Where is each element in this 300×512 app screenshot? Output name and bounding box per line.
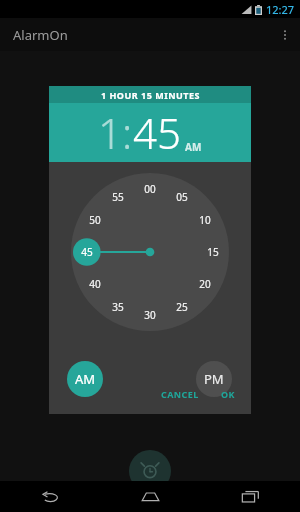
- staticText: 35: [112, 300, 124, 314]
- staticText: 20: [199, 277, 211, 291]
- staticText: 50: [89, 213, 101, 227]
- button[interactable]: 45: [76, 245, 98, 259]
- staticText: :: [122, 104, 133, 161]
- button[interactable]: OK: [215, 384, 241, 404]
- staticText: CANCEL: [161, 388, 199, 400]
- staticText: 55: [112, 190, 124, 204]
- staticText: 12:27: [266, 2, 295, 17]
- button[interactable]: 25: [171, 300, 193, 314]
- button[interactable]: CANCEL: [155, 384, 205, 404]
- staticText: 00: [144, 182, 156, 196]
- button[interactable]: 1: [98, 104, 122, 161]
- button[interactable]: 10: [194, 213, 216, 227]
- staticText: PM: [204, 370, 224, 388]
- button[interactable]: 05: [171, 190, 193, 204]
- button[interactable]: 50: [84, 213, 106, 227]
- button[interactable]: AM: [67, 361, 103, 397]
- button[interactable]: Home: [100, 481, 200, 512]
- button[interactable]: 45: [133, 104, 181, 161]
- button[interactable]: 30: [139, 308, 161, 322]
- button[interactable]: Add alarm: [129, 450, 171, 492]
- staticText: 45: [81, 245, 93, 259]
- staticText: 30: [144, 308, 156, 322]
- button[interactable]: 40: [84, 277, 106, 291]
- staticText: OK: [221, 388, 235, 400]
- button[interactable]: Recent apps: [200, 481, 300, 512]
- button[interactable]: AM: [185, 140, 202, 154]
- staticText: AM: [75, 370, 96, 388]
- staticText: 05: [176, 190, 188, 204]
- button[interactable]: 20: [194, 277, 216, 291]
- button[interactable]: Back: [0, 481, 100, 512]
- button[interactable]: PM: [196, 361, 232, 397]
- staticText: 40: [89, 277, 101, 291]
- staticText: AlarmOn: [13, 26, 68, 44]
- button[interactable]: 55: [107, 190, 129, 204]
- staticText: 15: [207, 245, 219, 259]
- button[interactable]: 00: [139, 182, 161, 196]
- button[interactable]: 15: [202, 245, 224, 259]
- button[interactable]: More options: [270, 20, 300, 50]
- button[interactable]: 35: [107, 300, 129, 314]
- staticText: 1 HOUR 15 MINUTES: [101, 89, 200, 101]
- staticText: 25: [176, 300, 188, 314]
- staticText: 10: [199, 213, 211, 227]
